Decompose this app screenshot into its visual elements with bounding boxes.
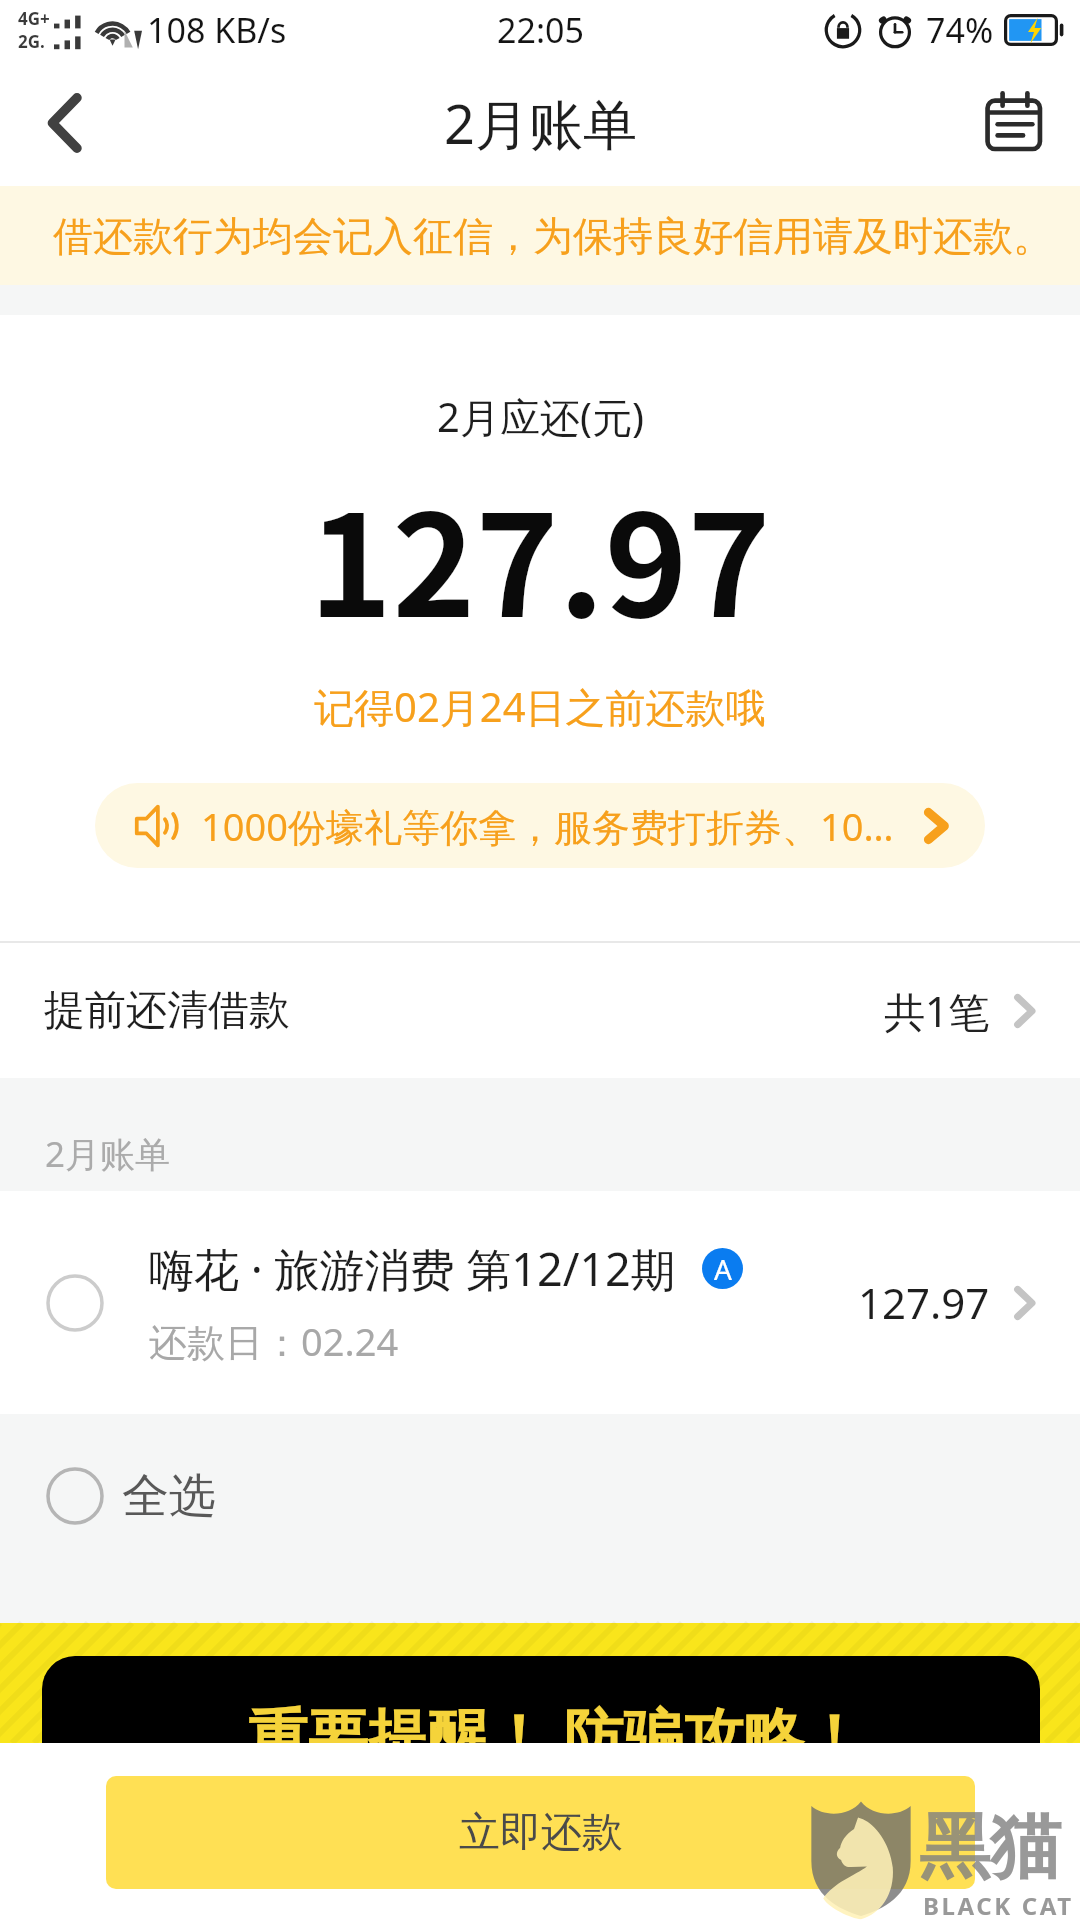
staticText: 重要提醒！ 防骗攻略！ [248, 1694, 864, 1743]
staticText: 借还款行为均会记入征信，为保持良好信用请及时还款。 [53, 211, 1053, 261]
staticText: 4G+ [18, 7, 50, 30]
staticText: 2G. [18, 30, 45, 53]
staticText: 2月应还(元) [437, 389, 644, 444]
staticText: A [714, 1250, 732, 1288]
button[interactable]: 1000份壕礼等你拿，服务费打折券、10… [95, 783, 985, 868]
staticText: 127.97 [309, 453, 771, 657]
staticText: 108 KB/s [147, 7, 287, 53]
staticText: 记得02月24日之前还款哦 [314, 679, 766, 734]
staticText: 立即还款 [459, 1807, 623, 1859]
button[interactable]: 重要提醒！ 防骗攻略！ [42, 1656, 1040, 1743]
staticText: 22:05 [497, 7, 584, 53]
staticText: 127.97 [858, 1274, 990, 1331]
staticText: 1000份壕礼等你拿，服务费打折券、10… [201, 800, 907, 852]
staticText: 共1笔 [884, 983, 990, 1039]
staticText: 全选 [122, 1467, 216, 1526]
button[interactable]: Bill calendar [950, 60, 1080, 186]
staticText: 黑猫 [919, 1803, 1061, 1892]
button[interactable]: Back [0, 60, 130, 186]
staticText: 2月账单 [45, 1130, 171, 1178]
button[interactable]: 全选 [0, 1414, 1080, 1578]
staticText: BLACK CAT [923, 1889, 1074, 1920]
staticText: 嗨花 · 旅游消费 第12/12期 [149, 1238, 676, 1299]
staticText: 74% [926, 7, 994, 53]
staticText: 还款日：02.24 [149, 1315, 399, 1367]
staticText: 2月账单 [444, 86, 637, 160]
staticText: 提前还清借款 [44, 985, 290, 1037]
button[interactable]: 立即还款 [106, 1776, 975, 1889]
button[interactable]: 提前还清借款 [0, 943, 1080, 1078]
button[interactable]: 嗨花 · 旅游消费 第12/12期 [0, 1191, 1080, 1414]
